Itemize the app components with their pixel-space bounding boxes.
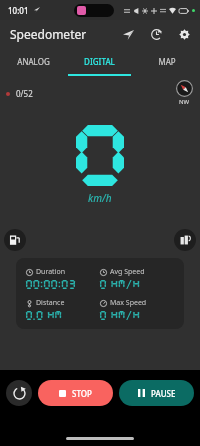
staticText: STOP — [72, 388, 92, 399]
staticText: DIGITAL — [84, 56, 115, 67]
button[interactable]: Duration — [26, 267, 100, 289]
staticText: Duration — [36, 267, 66, 277]
staticText: Speedometer — [10, 26, 87, 42]
staticText: Avg Speed — [110, 267, 145, 277]
staticText: Max Speed — [110, 298, 147, 308]
staticText: PAUSE — [151, 388, 176, 399]
button[interactable]: Compass — [176, 80, 193, 106]
button[interactable]: ANALOG — [0, 48, 66, 74]
staticText: Distance — [36, 298, 65, 308]
button[interactable]: Avg Speed — [100, 267, 174, 289]
button[interactable]: STOP — [38, 380, 113, 406]
button[interactable]: History — [148, 26, 164, 42]
button[interactable]: MAP — [133, 48, 200, 74]
button[interactable]: DIGITAL — [66, 48, 133, 74]
button[interactable]: PAUSE — [119, 380, 194, 406]
button[interactable]: Reset — [6, 380, 32, 406]
button[interactable]: Max Speed — [100, 298, 174, 320]
button[interactable]: Fuel — [4, 229, 26, 251]
staticText: 0/52 — [16, 88, 33, 99]
staticText: 10:01 — [8, 5, 29, 16]
button[interactable]: Send — [120, 26, 136, 42]
staticText: ANALOG — [17, 56, 50, 67]
staticText: MAP — [158, 56, 176, 67]
staticText: NW — [179, 98, 190, 106]
button[interactable]: Settings — [176, 26, 192, 42]
button[interactable]: Share — [174, 229, 196, 251]
button[interactable]: Distance — [26, 298, 100, 320]
staticText: km/h — [88, 191, 112, 205]
